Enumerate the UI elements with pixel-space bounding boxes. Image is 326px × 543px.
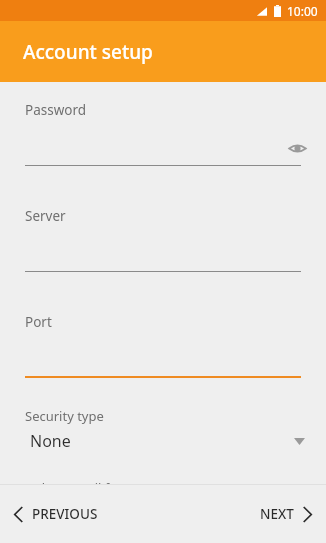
button[interactable]: Security type (0, 407, 326, 454)
staticText: Server (25, 207, 66, 225)
staticText: Password (25, 101, 87, 119)
button[interactable]: NEXT (260, 485, 326, 543)
button[interactable]: Show password (286, 137, 308, 159)
button[interactable]: Show password (0, 119, 326, 166)
staticText: NEXT (260, 505, 294, 523)
button[interactable] (0, 331, 326, 378)
staticText: Security type (25, 407, 104, 425)
staticText: PREVIOUS (32, 505, 98, 523)
button[interactable] (0, 225, 326, 272)
staticText: None (30, 430, 71, 452)
staticText: Account setup (23, 39, 153, 65)
staticText: Port (25, 313, 52, 331)
button[interactable]: PREVIOUS (0, 485, 147, 543)
staticText: 10:00 (287, 3, 318, 19)
button[interactable]: Delete email from server (0, 479, 326, 484)
staticText: Delete email from server (25, 479, 176, 484)
